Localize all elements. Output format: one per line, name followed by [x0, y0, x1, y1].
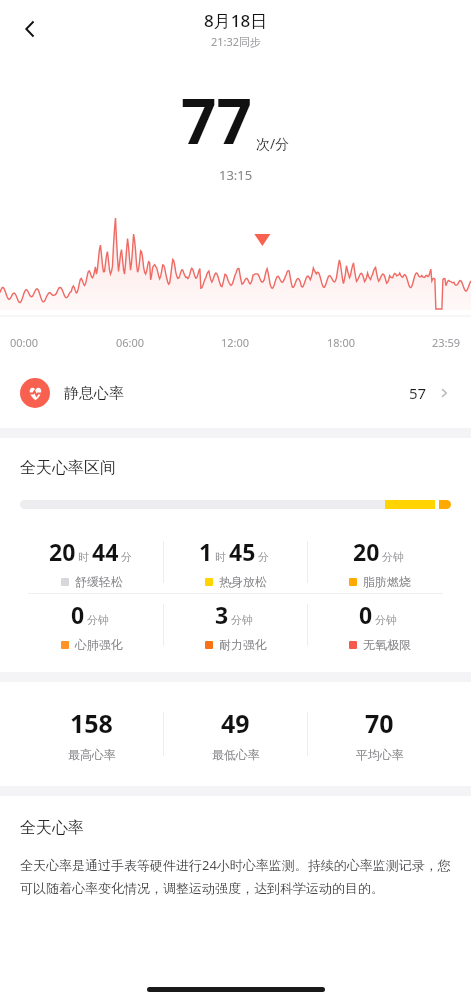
staticText: 分钟	[87, 613, 109, 627]
staticText: 分	[258, 550, 269, 564]
staticText: 分钟	[375, 613, 397, 627]
staticText: 最低心率	[212, 747, 260, 762]
staticText: 全天心率区间	[20, 458, 116, 478]
staticText: 06:00	[116, 335, 145, 350]
staticText: 45	[229, 536, 256, 567]
staticText: 舒缓轻松	[75, 574, 123, 589]
staticText: 158	[70, 706, 113, 740]
staticText: 时	[215, 550, 226, 564]
staticText: 70	[365, 706, 394, 740]
staticText: 77	[181, 78, 252, 162]
staticText: 20	[353, 536, 380, 567]
staticText: 57	[409, 383, 427, 403]
staticText: 次/分	[256, 134, 290, 153]
staticText: 热身放松	[219, 574, 267, 589]
staticText: 13:15	[219, 166, 253, 184]
staticText: 脂肪燃烧	[363, 574, 411, 589]
staticText: 时	[78, 550, 89, 564]
staticText: 全天心率	[20, 818, 84, 838]
staticText: 8月18日	[204, 9, 268, 32]
staticText: 平均心率	[356, 747, 404, 762]
staticText: 18:00	[327, 335, 356, 350]
staticText: 44	[92, 536, 119, 567]
staticText: 静息心率	[64, 384, 124, 403]
staticText: 23:59	[432, 335, 461, 350]
staticText: 20	[49, 536, 76, 567]
button[interactable]: Back	[8, 7, 52, 51]
staticText: 无氧极限	[363, 637, 411, 652]
staticText: 0	[71, 599, 85, 630]
staticText: 21:32同步	[211, 34, 262, 49]
staticText: 49	[221, 706, 250, 740]
staticText: 最高心率	[68, 747, 116, 762]
staticText: 分钟	[231, 613, 253, 627]
staticText: 3	[215, 599, 229, 630]
staticText: 0	[359, 599, 373, 630]
staticText: 12:00	[221, 335, 250, 350]
staticText: 耐力强化	[219, 637, 267, 652]
staticText: 心肺强化	[75, 637, 123, 652]
staticText: 分	[121, 550, 132, 564]
staticText: 1	[199, 536, 213, 567]
button[interactable]: 静息心率	[0, 358, 471, 428]
staticText: 00:00	[10, 335, 39, 350]
staticText: 全天心率是通过手表等硬件进行24小时心率监测。持续的心率监测记录，您可以随着心率…	[20, 856, 451, 897]
staticText: 分钟	[382, 550, 404, 564]
